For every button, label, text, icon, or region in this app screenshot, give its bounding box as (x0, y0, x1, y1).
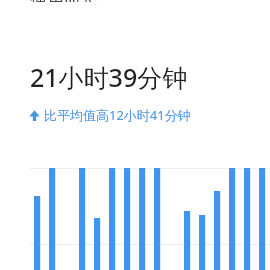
button[interactable]: 使用时长 (0, 0, 270, 12)
staticText: 比平均值高12小时41分钟 (44, 106, 191, 124)
staticText: 21小时39分钟 (30, 60, 188, 94)
button[interactable]: Increase (29, 106, 191, 124)
button[interactable]: Usage bar chart (0, 136, 270, 270)
other: Increase (29, 109, 40, 122)
staticText: 使用时长 (30, 0, 99, 2)
